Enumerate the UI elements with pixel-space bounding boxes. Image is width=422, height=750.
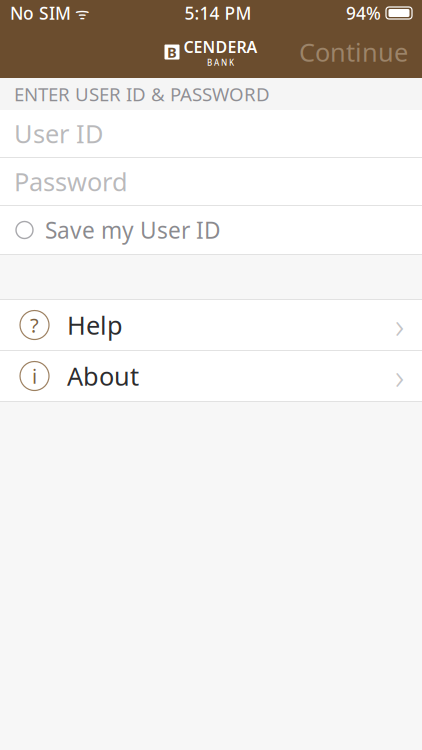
staticText: Save my User ID [45,215,221,245]
staticText: About [67,359,139,393]
button[interactable]: ? [0,300,422,350]
staticText: i [32,363,37,389]
staticText: ᯤ [71,2,90,24]
staticText: No SIM [10,1,71,24]
staticText: B [167,42,177,62]
staticText: Password [14,165,128,198]
staticText: Help [67,308,123,342]
staticText: ? [30,312,39,338]
button[interactable]: Continue [285,27,422,77]
staticText: › [395,353,404,399]
staticText: ENTER USER ID & PASSWORD [14,82,270,106]
staticText: 5:14 PM [184,1,251,24]
staticText: CENDERA [183,36,257,57]
staticText: B A N K [207,57,234,68]
staticText: 94% [346,1,381,24]
staticText: Continue [299,35,408,69]
staticText: User ID [14,117,103,150]
staticText: › [395,302,404,348]
button[interactable]: Save my User ID [0,206,422,254]
button[interactable]: i [0,351,422,401]
